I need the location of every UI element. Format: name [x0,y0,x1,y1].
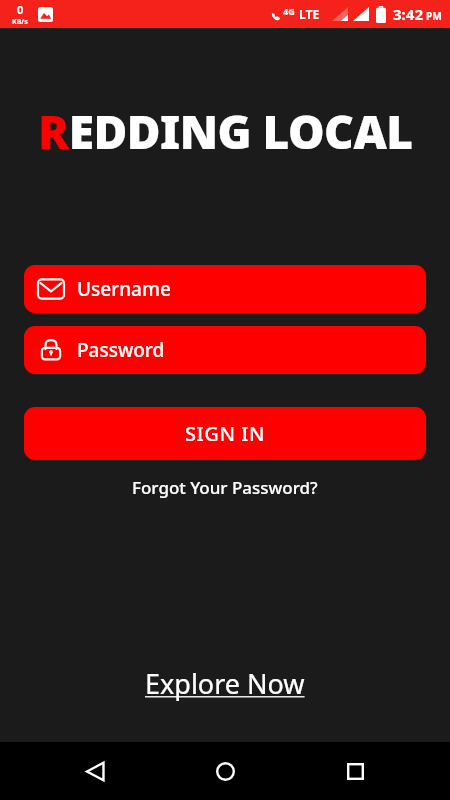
staticText: Password [77,337,165,363]
staticText: PM [426,9,442,23]
staticText: KB/s [12,17,28,27]
staticText: 3:42 [393,4,423,24]
staticText: 4G [283,5,295,17]
button[interactable]: SIGN IN [24,407,426,460]
staticText: Forgot Your Password? [132,476,318,499]
button[interactable]: Username [24,265,426,313]
button[interactable]: Home [190,742,260,800]
button[interactable]: Explore Now [133,661,317,706]
staticText: SIGN IN [185,420,266,447]
button[interactable]: Back [60,742,130,800]
staticText: 0 [17,2,24,17]
button[interactable]: Password [24,326,426,374]
button[interactable]: Recent apps [320,742,390,800]
staticText: Username [77,276,171,302]
staticText: LTE [299,6,320,22]
button[interactable]: Forgot Your Password? [118,470,332,505]
staticText: Explore Now [145,665,305,702]
staticText: REDDING LOCAL [38,100,413,163]
